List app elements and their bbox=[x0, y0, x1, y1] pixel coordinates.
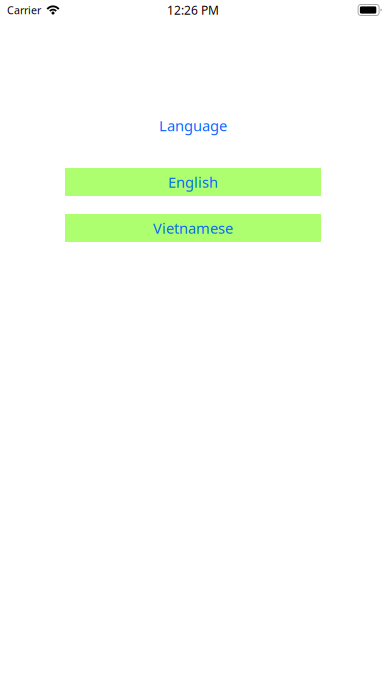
button[interactable]: English bbox=[65, 168, 321, 196]
staticText: Vietnamese bbox=[153, 218, 233, 238]
staticText: English bbox=[168, 172, 218, 192]
staticText: 12:26 PM bbox=[167, 2, 219, 18]
button[interactable]: Vietnamese bbox=[65, 214, 321, 242]
staticText: Carrier bbox=[7, 3, 41, 17]
staticText: Language bbox=[159, 116, 227, 135]
